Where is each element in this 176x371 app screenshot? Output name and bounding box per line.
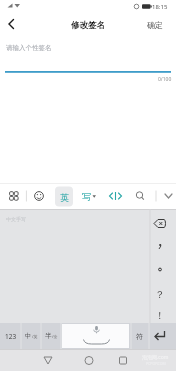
staticText: 写 bbox=[82, 191, 91, 202]
staticText: 泡泡网.com bbox=[142, 354, 169, 361]
button[interactable]: 半 bbox=[41, 323, 61, 349]
button[interactable]: ？ bbox=[147, 282, 173, 306]
staticText: 18:15 bbox=[152, 3, 168, 11]
button[interactable] bbox=[150, 216, 172, 232]
button[interactable] bbox=[0, 349, 58, 371]
button[interactable] bbox=[147, 235, 173, 259]
button[interactable] bbox=[58, 349, 117, 371]
button[interactable] bbox=[147, 259, 173, 282]
staticText: 确定 bbox=[147, 20, 163, 30]
button[interactable] bbox=[160, 188, 176, 204]
button[interactable] bbox=[107, 188, 124, 204]
staticText: 英 bbox=[60, 192, 69, 203]
button[interactable]: 123 bbox=[0, 323, 21, 349]
staticText: 123 bbox=[5, 332, 17, 341]
button[interactable]: ！ bbox=[147, 308, 173, 323]
staticText: 0/100 bbox=[158, 76, 172, 83]
staticText: ？ bbox=[155, 288, 165, 301]
button[interactable] bbox=[0, 36, 176, 74]
button[interactable] bbox=[31, 188, 47, 204]
button[interactable]: 英 bbox=[55, 187, 73, 207]
button[interactable] bbox=[117, 349, 176, 371]
button[interactable] bbox=[6, 188, 22, 204]
staticText: 中 bbox=[25, 332, 32, 340]
staticText: 请输入个性签名 bbox=[6, 44, 52, 52]
button[interactable] bbox=[131, 188, 148, 204]
staticText: /英 bbox=[32, 334, 38, 339]
staticText: 中文手写 bbox=[6, 216, 26, 222]
staticText: /全 bbox=[52, 334, 58, 339]
button[interactable]: 符 bbox=[130, 323, 148, 349]
button[interactable]: 确定 bbox=[147, 20, 176, 30]
button[interactable] bbox=[0, 14, 22, 36]
button[interactable]: 中 bbox=[21, 323, 41, 349]
button[interactable]: 写 bbox=[79, 189, 93, 203]
staticText: ！ bbox=[155, 309, 165, 322]
staticText: 修改签名 bbox=[71, 20, 105, 31]
button[interactable] bbox=[148, 323, 176, 349]
staticText: 符 bbox=[136, 332, 143, 341]
button[interactable] bbox=[62, 324, 129, 348]
staticText: 半 bbox=[45, 332, 52, 340]
